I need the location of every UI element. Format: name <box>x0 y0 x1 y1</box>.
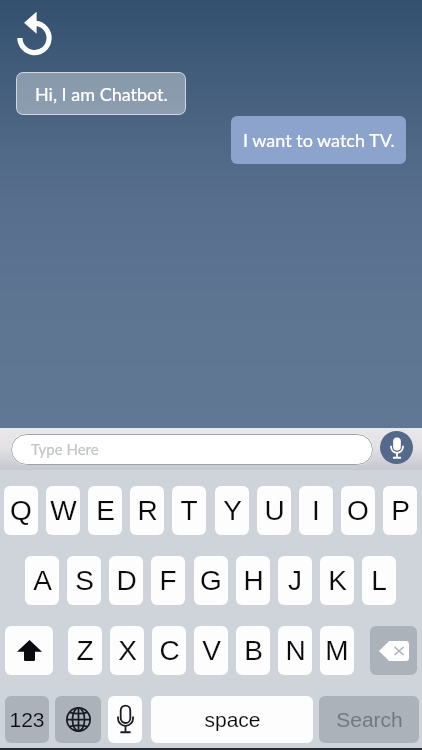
button[interactable]: P <box>383 486 417 535</box>
button[interactable]: D <box>109 556 143 605</box>
staticText: Hi, I am Chatbot. <box>35 83 168 105</box>
staticText: I <box>312 495 320 526</box>
button[interactable]: K <box>320 556 354 605</box>
staticText: Y <box>223 495 242 526</box>
button[interactable]: S <box>67 556 101 605</box>
staticText: C <box>159 635 180 666</box>
staticText: M <box>325 635 349 666</box>
staticText: space <box>204 708 261 731</box>
button[interactable]: Voice input <box>380 431 413 464</box>
staticText: W <box>50 495 77 526</box>
staticText: F <box>159 565 177 596</box>
staticText: X <box>118 635 137 666</box>
button[interactable]: L <box>362 556 396 605</box>
button[interactable]: Dictate <box>108 696 142 743</box>
button[interactable]: Y <box>215 486 249 535</box>
staticText: Type Here <box>31 440 99 458</box>
staticText: S <box>75 565 94 596</box>
staticText: U <box>264 495 285 526</box>
button[interactable]: X <box>110 626 144 675</box>
button[interactable]: E <box>88 486 122 535</box>
staticText: G <box>200 565 222 596</box>
button[interactable]: Shift <box>5 626 53 675</box>
staticText: 123 <box>9 708 45 731</box>
staticText: J <box>288 565 302 596</box>
button[interactable]: W <box>46 486 80 535</box>
staticText: B <box>244 635 263 666</box>
button[interactable]: I <box>299 486 333 535</box>
button[interactable]: Z <box>68 626 102 675</box>
staticText: Z <box>76 635 94 666</box>
staticText: V <box>202 635 221 666</box>
staticText: Q <box>10 495 32 526</box>
staticText: P <box>391 495 410 526</box>
staticText: O <box>347 495 369 526</box>
staticText: T <box>180 495 198 526</box>
staticText: Search <box>336 708 403 731</box>
staticText: D <box>116 565 137 596</box>
button[interactable]: I want to watch TV. <box>231 116 406 164</box>
button[interactable]: N <box>278 626 312 675</box>
button[interactable]: F <box>151 556 185 605</box>
staticText: L <box>371 565 387 596</box>
button[interactable]: V <box>194 626 228 675</box>
button[interactable]: Backspace <box>370 626 417 675</box>
staticText: I want to watch TV. <box>243 129 395 151</box>
button[interactable]: Type Here <box>11 434 373 465</box>
button[interactable]: Restart conversation <box>8 6 60 58</box>
staticText: R <box>137 495 158 526</box>
staticText: E <box>96 495 115 526</box>
staticText: N <box>285 635 306 666</box>
button[interactable]: Hi, I am Chatbot. <box>16 72 186 115</box>
button[interactable]: M <box>320 626 354 675</box>
button[interactable]: J <box>278 556 312 605</box>
button[interactable]: R <box>130 486 164 535</box>
button[interactable]: A <box>25 556 59 605</box>
button[interactable]: O <box>341 486 375 535</box>
button[interactable]: H <box>236 556 270 605</box>
staticText: A <box>33 565 52 596</box>
button[interactable]: 123 <box>5 696 49 743</box>
button[interactable]: C <box>152 626 186 675</box>
button[interactable]: Change keyboard <box>55 696 101 743</box>
button[interactable]: space <box>151 696 313 743</box>
button[interactable]: T <box>172 486 206 535</box>
button[interactable]: U <box>257 486 291 535</box>
staticText: K <box>328 565 347 596</box>
button[interactable]: Q <box>4 486 38 535</box>
button[interactable]: G <box>194 556 228 605</box>
staticText: H <box>243 565 264 596</box>
button[interactable]: B <box>236 626 270 675</box>
button[interactable]: Search <box>319 696 419 743</box>
